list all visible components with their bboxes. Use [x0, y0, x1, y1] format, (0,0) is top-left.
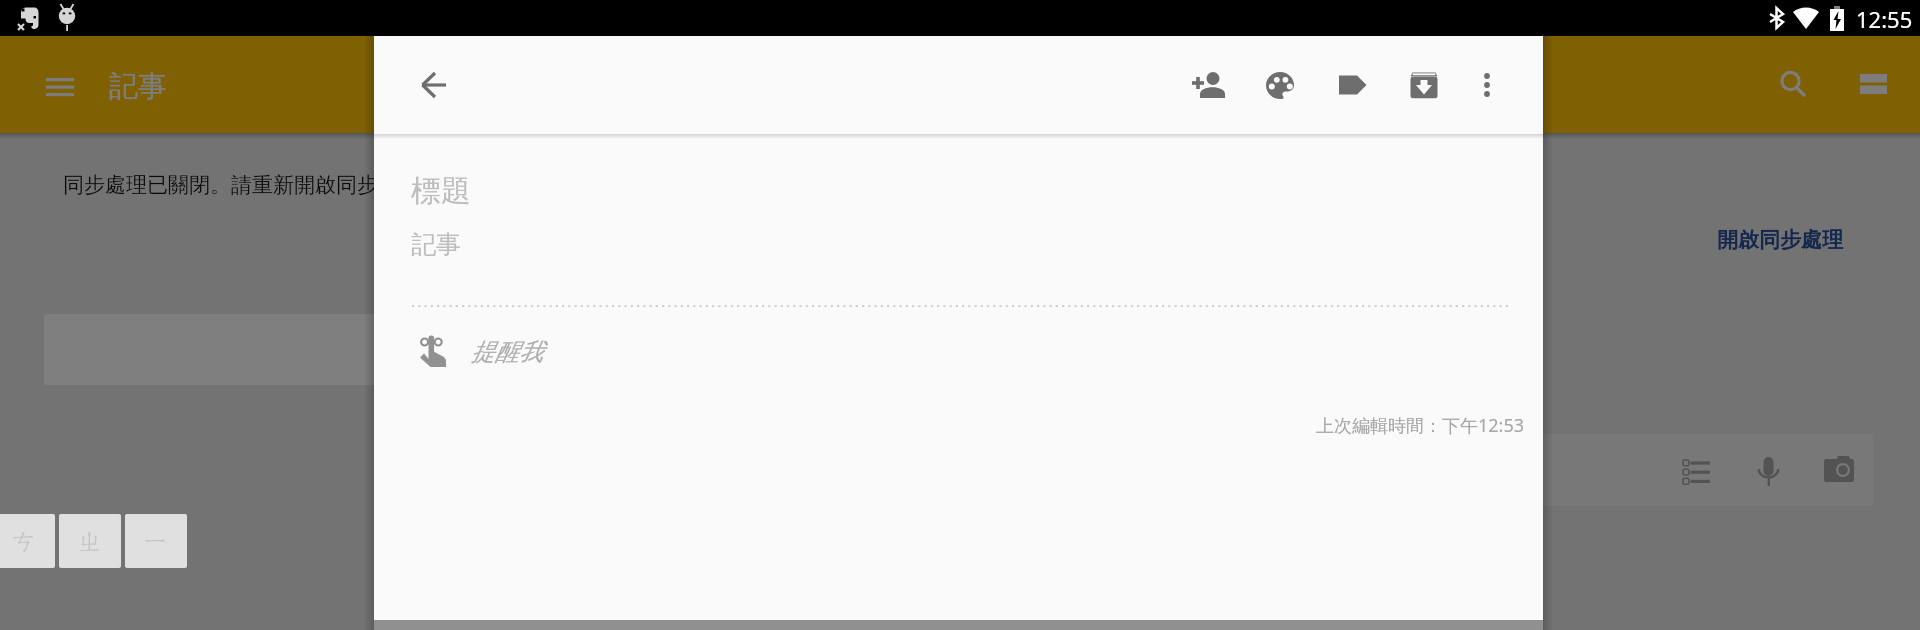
button[interactable]: More options	[1456, 54, 1518, 116]
button[interactable]: Change colour	[1249, 54, 1311, 116]
button[interactable]: New photo note	[1810, 440, 1868, 498]
staticText: ㄧ	[143, 525, 170, 558]
button[interactable]: Note	[44, 314, 1284, 385]
button[interactable]: 提醒我	[404, 322, 704, 378]
button[interactable]: Switch list view	[1844, 55, 1902, 113]
staticText: 上次編輯時間：下午12:53	[1316, 413, 1525, 438]
staticText: ㄘ	[11, 525, 38, 558]
staticText: 同步處理已關閉。請重新開啟同步處理。	[63, 172, 441, 198]
button[interactable]: Search	[1765, 55, 1823, 113]
button[interactable]: 開啟同步處理	[1717, 227, 1843, 253]
button[interactable]: 記事	[404, 222, 1513, 302]
button[interactable]: New voice note	[1740, 442, 1798, 500]
staticText: 記事	[109, 68, 167, 105]
button[interactable]: New list	[1667, 443, 1725, 501]
button[interactable]: Archive	[1393, 54, 1455, 116]
staticText: 12:55	[1856, 4, 1913, 34]
staticText: 記事	[411, 229, 461, 260]
button[interactable]: Add collaborator	[1177, 54, 1239, 116]
button[interactable]: 標題	[404, 160, 1513, 218]
button[interactable]: ㄘ	[0, 514, 55, 568]
button[interactable]: ㄓ	[59, 514, 121, 568]
button[interactable]: Open navigation drawer	[31, 58, 89, 116]
button[interactable]: ㄧ	[125, 514, 187, 568]
button[interactable]: Add label	[1321, 54, 1383, 116]
staticText: 提醒我	[471, 337, 543, 367]
button[interactable]: Back	[406, 54, 468, 116]
staticText: 標題	[411, 172, 471, 210]
staticText: ㄓ	[77, 525, 104, 558]
